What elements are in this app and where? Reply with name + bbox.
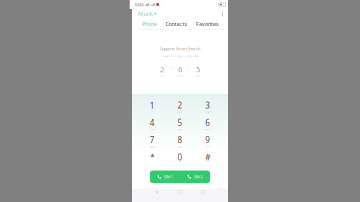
staticText: PQRS: [150, 145, 155, 148]
staticText: MNO: [205, 128, 211, 131]
button[interactable]: 8: [166, 133, 194, 150]
staticText: Contacts: [165, 20, 187, 28]
staticText: Favorites: [196, 20, 219, 28]
button[interactable]: Back: [152, 189, 161, 202]
button[interactable]: Contacts: [165, 19, 187, 29]
button[interactable]: 6: [194, 116, 221, 133]
staticText: 8: [177, 135, 182, 145]
staticText: Supports Smart Search: [160, 46, 200, 51]
staticText: DEF: [206, 110, 210, 114]
staticText: 3: [205, 100, 210, 111]
staticText: SIM2: [194, 174, 203, 179]
staticText: TUV: [178, 145, 182, 148]
staticText: 9: [205, 135, 210, 145]
staticText: MNO: [177, 74, 183, 77]
button[interactable]: 5: [166, 116, 194, 133]
staticText: 6: [205, 117, 210, 128]
staticText: 2: [160, 64, 164, 74]
button[interactable]: 9: [194, 133, 221, 150]
staticText: 2: [177, 100, 182, 111]
button[interactable]: 2: [166, 98, 194, 116]
staticText: Phone: [142, 20, 157, 28]
staticText: 5: [196, 64, 200, 74]
staticText: *: [150, 152, 154, 163]
button[interactable]: All calls: [132, 9, 162, 19]
staticText: 0: [177, 152, 182, 163]
button[interactable]: 0: [166, 150, 194, 168]
button[interactable]: SIM2: [180, 170, 210, 183]
button[interactable]: 3: [194, 98, 221, 116]
staticText: JKL: [196, 74, 199, 77]
button[interactable]: 7: [138, 133, 166, 150]
button[interactable]: 1: [138, 98, 166, 116]
button[interactable]: Favorites: [196, 19, 219, 29]
button[interactable]: #: [194, 150, 221, 168]
button[interactable]: Recents: [198, 189, 207, 202]
staticText: JKL: [178, 128, 181, 131]
staticText: All calls: [137, 11, 152, 17]
staticText: WXYZ: [205, 145, 210, 148]
staticText: 4: [150, 117, 155, 128]
staticText: 7: [150, 135, 155, 145]
staticText: To search for "Tomek", simply input: [161, 54, 198, 58]
staticText: GHI: [150, 128, 155, 131]
staticText: ABC: [177, 110, 183, 114]
staticText: #: [205, 152, 210, 163]
staticText: SIM1: [164, 174, 173, 179]
button[interactable]: SIM1: [150, 170, 180, 183]
button[interactable]: *: [138, 150, 166, 168]
button[interactable]: 4: [138, 116, 166, 133]
staticText: 1: [150, 100, 155, 111]
staticText: 5: [177, 117, 182, 128]
staticText: 6: [178, 64, 182, 74]
staticText: 10:43: [134, 2, 143, 7]
button[interactable]: More options: [217, 9, 228, 19]
staticText: ∙∙: [150, 110, 154, 113]
staticText: ABC: [159, 74, 165, 77]
button[interactable]: Phone: [142, 19, 157, 29]
button[interactable]: Home: [175, 189, 184, 202]
